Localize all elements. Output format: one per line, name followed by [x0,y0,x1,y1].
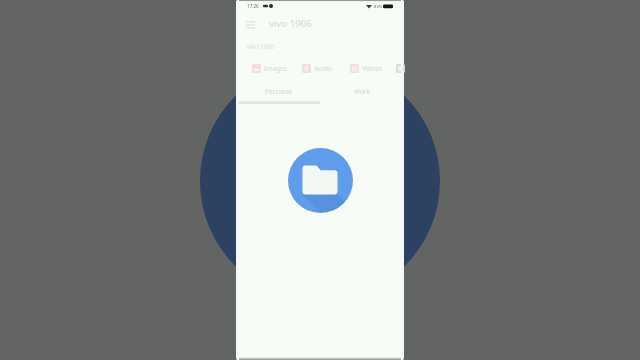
staticText: Videos [362,64,383,73]
staticText: vivo 1906 [269,17,312,30]
button[interactable]: Audio [302,64,332,73]
staticText: Personal [265,87,292,96]
button[interactable]: Videos [350,64,383,73]
button[interactable]: Images [252,64,287,73]
button[interactable]: Files [288,148,353,213]
button[interactable]: Work [320,84,404,98]
button[interactable]: Menu [243,17,257,31]
staticText: vivo 1906 [247,42,275,50]
staticText: 17:26 [247,3,259,9]
staticText: 83% [374,4,383,10]
button[interactable]: Personal [236,84,320,98]
button[interactable] [396,64,405,73]
staticText: Work [354,87,371,96]
staticText: Images [264,64,287,73]
staticText: Audio [314,64,332,73]
